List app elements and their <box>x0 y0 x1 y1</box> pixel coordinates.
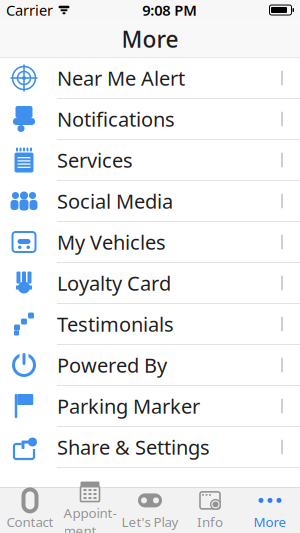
button[interactable]: Powered By <box>0 345 300 386</box>
staticText: Social Media <box>57 188 173 214</box>
staticText: More <box>121 24 178 54</box>
button[interactable]: Notifications <box>0 99 300 140</box>
button[interactable]: Services <box>0 140 300 181</box>
staticText: Testimonials <box>57 311 174 337</box>
button[interactable]: Parking Marker <box>0 386 300 427</box>
staticText: My Vehicles <box>57 229 166 255</box>
staticText: Appointment <box>63 504 116 533</box>
staticText: Carrier <box>6 0 53 20</box>
button[interactable]: Let's Play <box>120 487 180 533</box>
staticText: Info <box>197 513 223 531</box>
button[interactable]: Testimonials <box>0 304 300 345</box>
staticText: Powered By <box>57 352 167 378</box>
staticText: Loyalty Card <box>57 270 171 296</box>
staticText: Notifications <box>57 106 175 132</box>
button[interactable]: My Vehicles <box>0 222 300 263</box>
staticText: Contact <box>6 513 53 531</box>
button[interactable]: Share & Settings <box>0 427 300 468</box>
button[interactable]: Near Me Alert <box>0 58 300 99</box>
staticText: Near Me Alert <box>57 65 185 91</box>
staticText: Parking Marker <box>57 393 200 419</box>
button[interactable]: Social Media <box>0 181 300 222</box>
staticText: More <box>253 513 286 531</box>
button[interactable]: Info <box>180 487 240 533</box>
staticText: Services <box>57 147 133 173</box>
button[interactable]: Contact <box>0 487 60 533</box>
staticText: 9:08 PM <box>142 0 197 20</box>
staticText: Share & Settings <box>57 434 210 460</box>
staticText: Let's Play <box>121 513 178 531</box>
button[interactable]: Appointment <box>60 487 120 533</box>
button[interactable]: Loyalty Card <box>0 263 300 304</box>
button[interactable]: More <box>240 487 300 533</box>
